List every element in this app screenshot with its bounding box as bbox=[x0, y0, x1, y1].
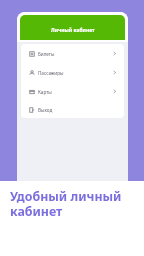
button[interactable]: Билеты bbox=[21, 44, 124, 63]
staticText: Пассажиры bbox=[38, 70, 64, 76]
other: Open Билеты bbox=[112, 51, 117, 56]
button[interactable]: Карты bbox=[21, 82, 124, 101]
button[interactable]: Пассажиры bbox=[21, 63, 124, 82]
other: Open Пассажиры bbox=[112, 70, 117, 75]
staticText: Выход bbox=[38, 107, 53, 113]
staticText: Личный кабинет bbox=[51, 27, 95, 34]
staticText: Удобный личный кабинет bbox=[10, 188, 122, 219]
staticText: Билеты bbox=[38, 51, 55, 57]
button[interactable]: Выход bbox=[21, 101, 124, 118]
staticText: Карты bbox=[38, 89, 52, 95]
other: Open Карты bbox=[112, 89, 117, 94]
